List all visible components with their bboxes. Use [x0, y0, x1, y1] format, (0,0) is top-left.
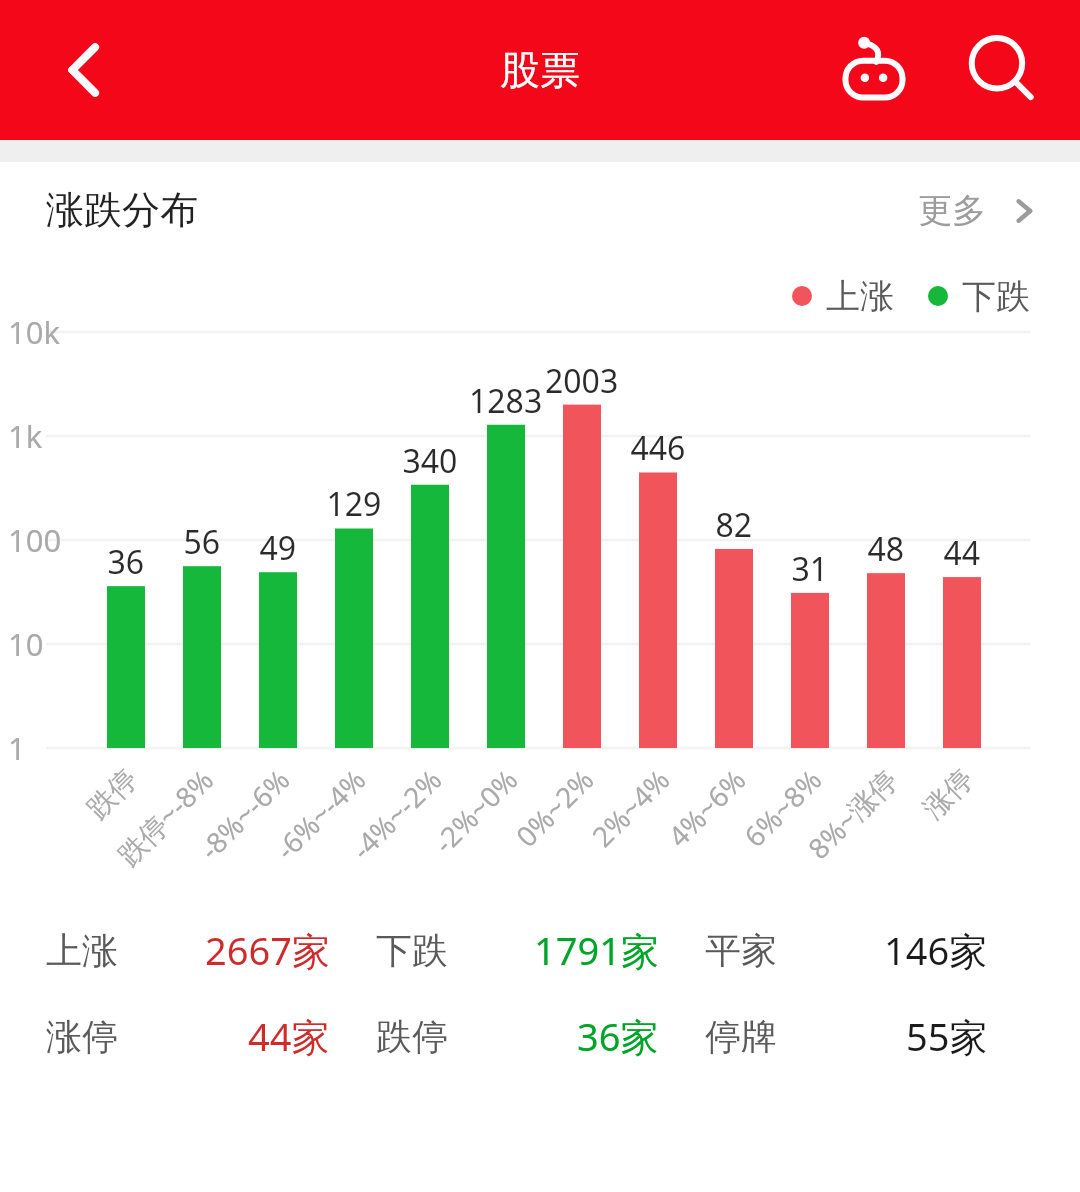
staticText: 涨停: [46, 1014, 118, 1059]
staticText: 36家: [577, 1010, 659, 1062]
staticText: 2667家: [205, 924, 330, 976]
staticText: 1791家: [534, 924, 659, 976]
staticText: 下跌: [962, 275, 1030, 318]
staticText: 44家: [248, 1010, 330, 1062]
staticText: 股票: [500, 45, 580, 95]
button[interactable]: 更多: [918, 189, 1042, 232]
staticText: 停牌: [705, 1014, 777, 1059]
button[interactable]: Back: [48, 32, 124, 108]
button[interactable]: 涨停: [46, 1010, 376, 1062]
staticText: 上涨: [826, 275, 894, 318]
button[interactable]: 停牌: [705, 1010, 1034, 1062]
staticText: 跌停: [376, 1014, 448, 1059]
staticText: 平家: [705, 928, 777, 973]
button[interactable]: Search: [960, 28, 1044, 112]
staticText: 更多: [918, 189, 986, 232]
staticText: 下跌: [376, 928, 448, 973]
staticText: 55家: [906, 1010, 988, 1062]
button[interactable]: 平家: [705, 924, 1034, 976]
button[interactable]: 上涨: [46, 924, 376, 976]
staticText: 涨跌分布: [46, 186, 198, 234]
staticText: 146家: [884, 924, 988, 976]
button[interactable]: 跌停: [376, 1010, 705, 1062]
staticText: 上涨: [46, 928, 118, 973]
button[interactable]: AI assistant: [828, 24, 920, 116]
button[interactable]: 下跌: [376, 924, 705, 976]
